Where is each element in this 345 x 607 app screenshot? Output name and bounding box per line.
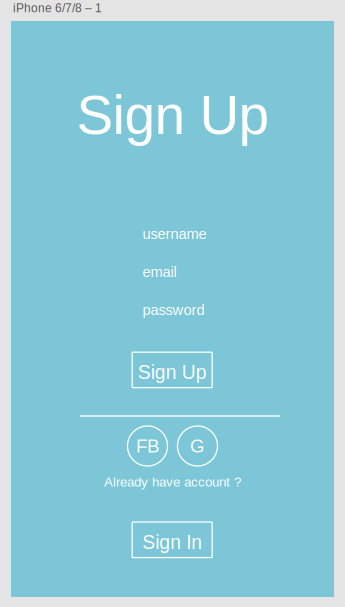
staticText: username <box>142 226 206 242</box>
staticText: Sign Up <box>76 84 268 146</box>
staticText: iPhone 6/7/8 – 1 <box>13 1 102 15</box>
staticText: FB <box>136 436 159 456</box>
staticText: email <box>142 264 176 280</box>
button[interactable]: G <box>177 426 217 466</box>
staticText: Sign Up <box>138 362 207 383</box>
staticText: password <box>142 302 204 318</box>
staticText: G <box>190 436 205 456</box>
button[interactable]: Sign Up <box>132 352 212 388</box>
staticText: Sign In <box>142 531 202 553</box>
button[interactable]: FB <box>127 426 167 466</box>
button[interactable]: Sign In <box>132 522 212 557</box>
staticText: Already have account ? <box>104 475 241 489</box>
